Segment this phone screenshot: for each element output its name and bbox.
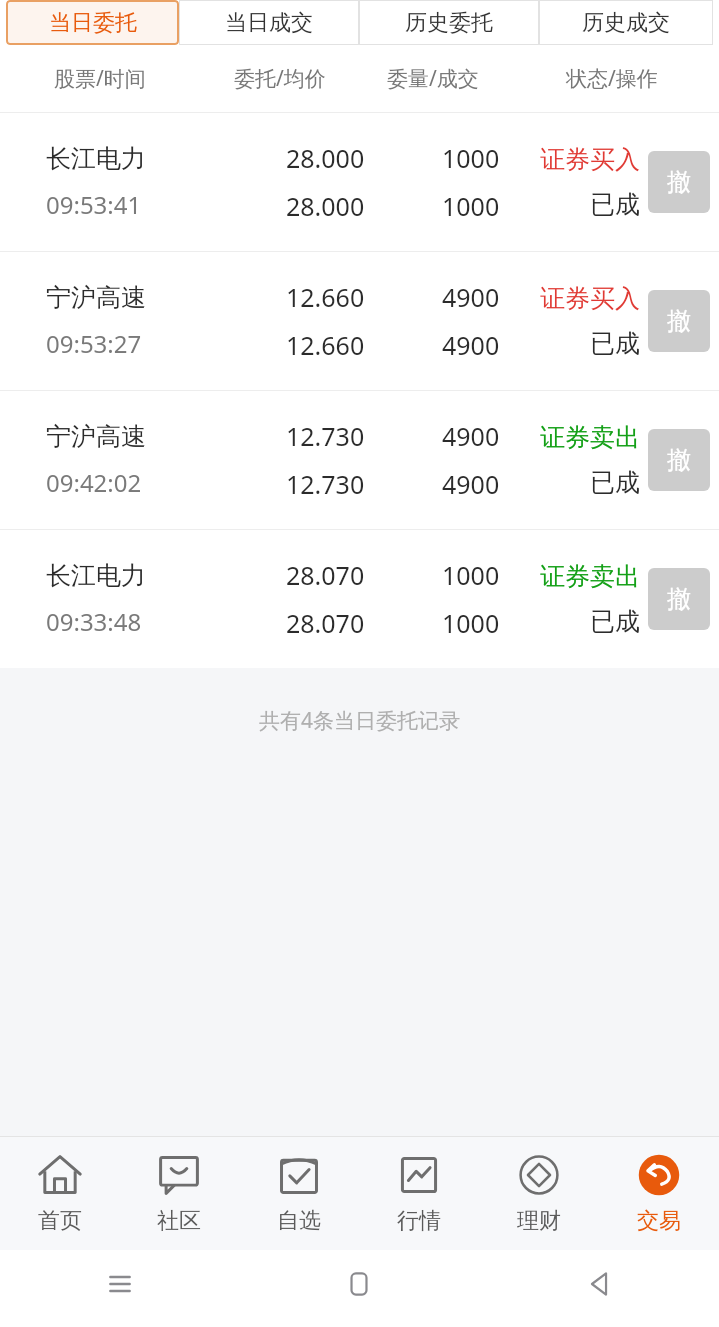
button[interactable]: 撤: [648, 429, 710, 491]
staticText: 共有4条当日委托记录: [259, 706, 461, 735]
staticText: 28.070: [286, 606, 365, 640]
button[interactable]: Recents: [0, 1250, 239, 1327]
button[interactable]: 撤: [648, 290, 710, 352]
staticText: 4900: [442, 419, 500, 453]
staticText: 委托/均价: [234, 64, 326, 93]
staticText: 撤: [667, 306, 691, 336]
staticText: 12.730: [286, 419, 365, 453]
staticText: 1000: [442, 189, 500, 223]
staticText: 撤: [667, 167, 691, 197]
staticText: 28.070: [286, 558, 365, 592]
staticText: 已成: [590, 467, 640, 498]
staticText: 撤: [667, 584, 691, 614]
staticText: 历史成交: [582, 9, 670, 37]
staticText: 1000: [442, 141, 500, 175]
staticText: 长江电力: [46, 560, 146, 591]
staticText: 当日委托: [49, 9, 137, 37]
staticText: 宁沪高速: [46, 421, 146, 452]
staticText: 证券买入: [540, 144, 640, 175]
staticText: 证券卖出: [540, 561, 640, 592]
staticText: 12.660: [286, 280, 365, 314]
staticText: 09:53:27: [46, 327, 142, 360]
button[interactable]: 首页: [0, 1137, 119, 1250]
staticText: 历史委托: [405, 9, 493, 37]
button[interactable]: 历史委托: [359, 0, 539, 45]
staticText: 当日成交: [225, 9, 313, 37]
staticText: 09:33:48: [46, 605, 142, 638]
button[interactable]: 长江电力: [0, 113, 719, 251]
staticText: 28.000: [286, 141, 365, 175]
staticText: 自选: [277, 1207, 321, 1235]
staticText: 已成: [590, 606, 640, 637]
staticText: 社区: [157, 1207, 201, 1235]
staticText: 已成: [590, 328, 640, 359]
button[interactable]: 撤: [648, 151, 710, 213]
staticText: 12.660: [286, 328, 365, 362]
staticText: 行情: [397, 1207, 441, 1235]
staticText: 已成: [590, 189, 640, 220]
staticText: 状态/操作: [566, 64, 658, 93]
staticText: 28.000: [286, 189, 365, 223]
button[interactable]: 宁沪高速: [0, 252, 719, 390]
staticText: 长江电力: [46, 143, 146, 174]
button[interactable]: 当日委托: [6, 0, 179, 45]
staticText: 撤: [667, 445, 691, 475]
button[interactable]: 自选: [239, 1137, 359, 1250]
button[interactable]: Home: [239, 1250, 479, 1327]
staticText: 股票/时间: [54, 64, 146, 93]
button[interactable]: 社区: [119, 1137, 239, 1250]
staticText: 09:53:41: [46, 188, 142, 221]
staticText: 证券卖出: [540, 422, 640, 453]
staticText: 09:42:02: [46, 466, 142, 499]
staticText: 12.730: [286, 467, 365, 501]
staticText: 委量/成交: [387, 64, 479, 93]
staticText: 宁沪高速: [46, 282, 146, 313]
staticText: 4900: [442, 467, 500, 501]
button[interactable]: Back: [479, 1250, 719, 1327]
staticText: 1000: [442, 606, 500, 640]
staticText: 交易: [637, 1207, 681, 1235]
button[interactable]: 交易: [599, 1137, 719, 1250]
staticText: 1000: [442, 558, 500, 592]
button[interactable]: 理财: [479, 1137, 599, 1250]
button[interactable]: 当日成交: [179, 0, 359, 45]
staticText: 4900: [442, 280, 500, 314]
staticText: 首页: [38, 1207, 82, 1235]
button[interactable]: 撤: [648, 568, 710, 630]
button[interactable]: 宁沪高速: [0, 391, 719, 529]
button[interactable]: 行情: [359, 1137, 479, 1250]
staticText: 4900: [442, 328, 500, 362]
button[interactable]: 长江电力: [0, 530, 719, 668]
staticText: 证券买入: [540, 283, 640, 314]
button[interactable]: 历史成交: [539, 0, 713, 45]
staticText: 理财: [517, 1207, 561, 1235]
